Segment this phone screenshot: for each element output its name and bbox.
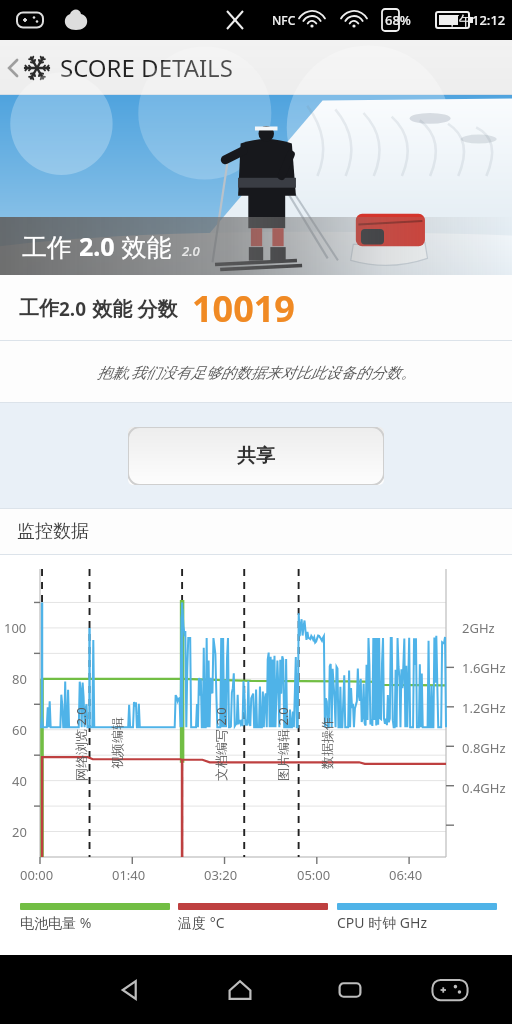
button[interactable]: Home xyxy=(210,960,270,1020)
staticText: CPU 时钟 GHz xyxy=(337,913,427,932)
staticText: 80 xyxy=(12,670,27,688)
staticText: 工作 xyxy=(22,229,79,263)
staticText: 共享 xyxy=(237,444,275,468)
staticText: 100 xyxy=(4,619,27,637)
staticText: SCORE DETAILS xyxy=(60,51,233,84)
staticText: 68% xyxy=(385,11,411,29)
staticText: 视频编辑 xyxy=(109,717,125,769)
staticText: 2.0 xyxy=(59,296,87,322)
staticText: 10019 xyxy=(192,284,295,333)
staticText: 网络浏览 2.0 xyxy=(72,707,90,781)
staticText: 60 xyxy=(12,721,27,739)
button[interactable]: Back xyxy=(100,960,160,1020)
staticText: 温度 °C xyxy=(178,913,225,932)
staticText: 电池电量 % xyxy=(20,913,92,932)
staticText: 文档编写 2.0 xyxy=(212,707,230,781)
staticText: 效能 分数 xyxy=(87,295,178,322)
staticText: 05:00 xyxy=(297,866,331,884)
staticText: 1.6GHz xyxy=(462,659,506,677)
staticText: 2.0 xyxy=(182,242,200,260)
button[interactable]: Recent apps xyxy=(320,960,380,1020)
staticText: 下午12:12 xyxy=(446,11,506,29)
staticText: 0.8GHz xyxy=(462,739,506,757)
staticText: 抱歉,我们没有足够的数据来对比此设备的分数。 xyxy=(97,362,416,382)
staticText: 效能 xyxy=(115,229,172,263)
staticText: 2GHz xyxy=(462,619,495,637)
staticText: 2.0 xyxy=(79,229,115,263)
staticText: 图片编辑 2.0 xyxy=(274,707,292,781)
staticText: 0.4GHz xyxy=(462,779,506,797)
staticText: 06:40 xyxy=(389,866,423,884)
button[interactable]: Game mode xyxy=(420,960,480,1020)
staticText: 监控数据 xyxy=(17,520,89,543)
staticText: 01:40 xyxy=(112,866,146,884)
other: Back xyxy=(8,55,22,81)
staticText: 03:20 xyxy=(204,866,238,884)
button[interactable]: 共享 xyxy=(128,427,384,485)
button[interactable]: Back xyxy=(0,51,233,84)
staticText: 1.2GHz xyxy=(462,699,506,717)
staticText: 40 xyxy=(12,772,27,790)
staticText: 00:00 xyxy=(20,866,54,884)
staticText: 20 xyxy=(12,823,27,841)
staticText: NFC xyxy=(272,12,296,28)
staticText: 数据操作 xyxy=(319,717,335,769)
staticText: 工作 xyxy=(19,296,59,321)
